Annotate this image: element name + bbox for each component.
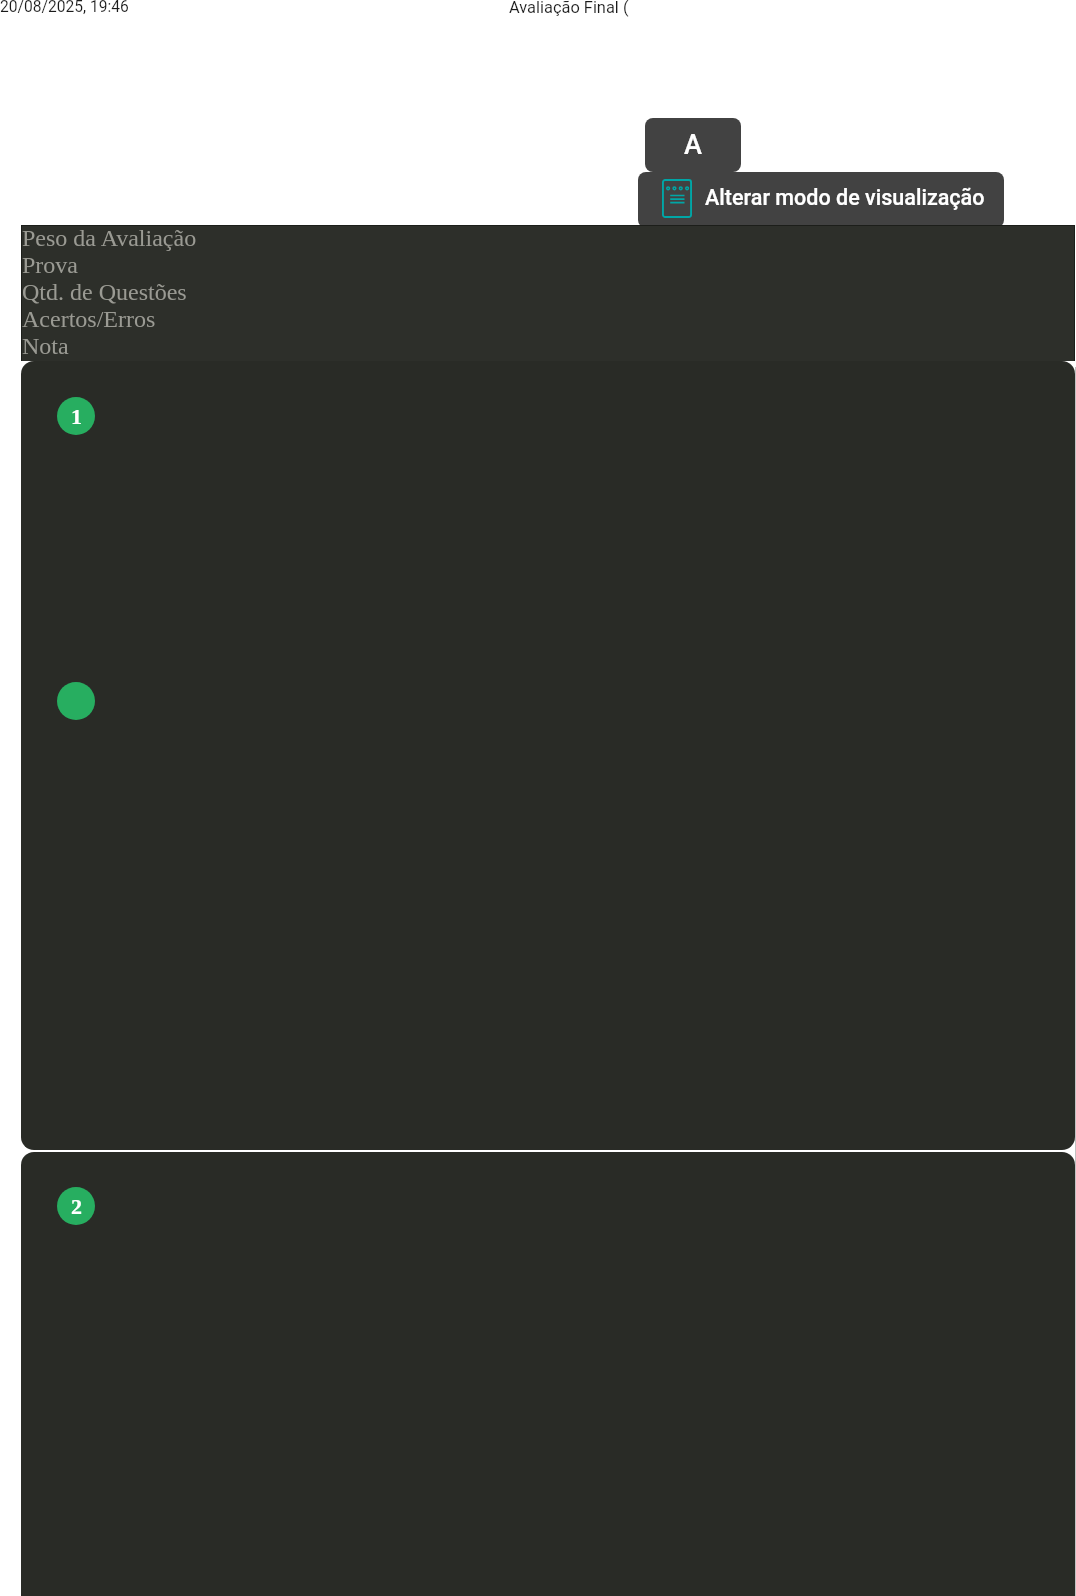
staticText: Prova (22, 252, 78, 279)
staticText: Alterar modo de visualização (705, 185, 985, 210)
staticText: Nota (22, 333, 69, 360)
staticText: Peso da Avaliação (22, 225, 197, 252)
staticText: Acertos/Erros (22, 306, 156, 333)
button[interactable]: Alterar modo de visualização (638, 172, 1004, 228)
button[interactable]: Tamanho do texto (645, 118, 741, 172)
staticText: A (684, 129, 702, 161)
other: Alterar modo de visualização (662, 179, 692, 218)
staticText: 20/08/2025, 19:46 (0, 0, 129, 16)
staticText: Qtd. de Questões (22, 279, 187, 306)
staticText: 2 (71, 1194, 82, 1218)
button[interactable]: 2 (21, 1152, 1075, 1596)
staticText: Avaliação Final ( (509, 0, 629, 17)
button[interactable]: 1 (21, 361, 1075, 1150)
staticText: 1 (71, 404, 82, 428)
